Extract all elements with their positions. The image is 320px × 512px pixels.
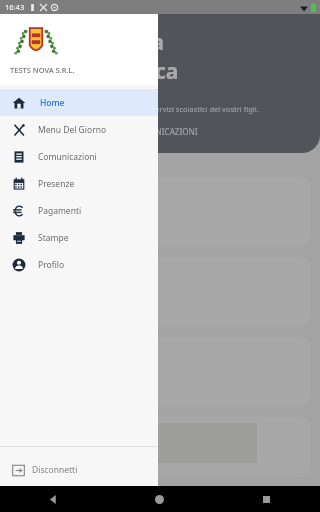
- staticText: Gestisci tutti e i servizi scolastici de…: [96, 104, 259, 114]
- staticText: Comunicazioni: [38, 151, 97, 163]
- button[interactable]: VAI ALLE COMUNICAZIONI: [96, 126, 198, 137]
- button[interactable]: Presenze: [0, 170, 158, 197]
- staticText: TESTS NOVA S.R.L.: [10, 65, 75, 75]
- button[interactable]: Disconnetti: [0, 447, 158, 493]
- staticText: Disconnetti: [32, 464, 78, 476]
- button[interactable]: Comunicazioni: [0, 143, 158, 170]
- button[interactable]: Recent apps: [213, 486, 320, 512]
- staticText: Pagamenti: [38, 205, 82, 217]
- button[interactable]: Pagamenti: [0, 197, 158, 224]
- staticText: Presenze: [38, 178, 75, 190]
- staticText: in Tasca: [96, 57, 179, 86]
- staticText: Home: [40, 97, 65, 109]
- button[interactable]: Profilo: [0, 251, 158, 278]
- button[interactable]: Home: [0, 89, 158, 116]
- staticText: VAI ALLE COMUNICAZIONI: [96, 126, 198, 137]
- button[interactable]: Home: [106, 486, 213, 512]
- button[interactable]: [10, 177, 310, 246]
- button[interactable]: [10, 417, 310, 477]
- staticText: Profilo: [38, 259, 65, 271]
- staticText: Menu Del Giorno: [38, 124, 107, 136]
- button[interactable]: Stampe: [0, 224, 158, 251]
- staticText: Scuola: [96, 28, 165, 57]
- button[interactable]: Menu Del Giorno: [0, 116, 158, 143]
- button[interactable]: [10, 257, 310, 326]
- staticText: Stampe: [38, 232, 69, 244]
- button[interactable]: [10, 337, 310, 406]
- staticText: 16:43: [5, 2, 25, 12]
- button[interactable]: Back: [0, 486, 106, 512]
